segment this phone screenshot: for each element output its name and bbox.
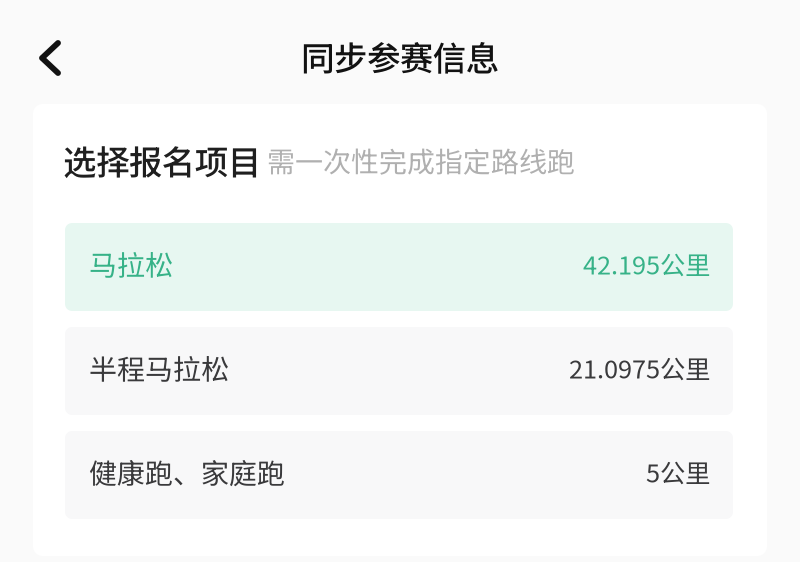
staticText: 同步参赛信息 — [301, 32, 499, 80]
staticText: 5公里 — [646, 453, 710, 490]
button[interactable]: Back — [0, 18, 83, 86]
button[interactable]: 半程马拉松 — [65, 327, 733, 415]
button[interactable]: 马拉松 — [65, 223, 733, 311]
staticText: 半程马拉松 — [89, 347, 229, 388]
staticText: 42.195公里 — [583, 245, 710, 282]
staticText: 21.0975公里 — [569, 349, 710, 386]
staticText: 需一次性完成指定路线跑 — [267, 140, 575, 180]
staticText: 选择报名项目 — [63, 136, 261, 184]
button[interactable]: 健康跑、家庭跑 — [65, 431, 733, 519]
staticText: 健康跑、家庭跑 — [89, 451, 285, 492]
staticText: 马拉松 — [89, 243, 173, 284]
